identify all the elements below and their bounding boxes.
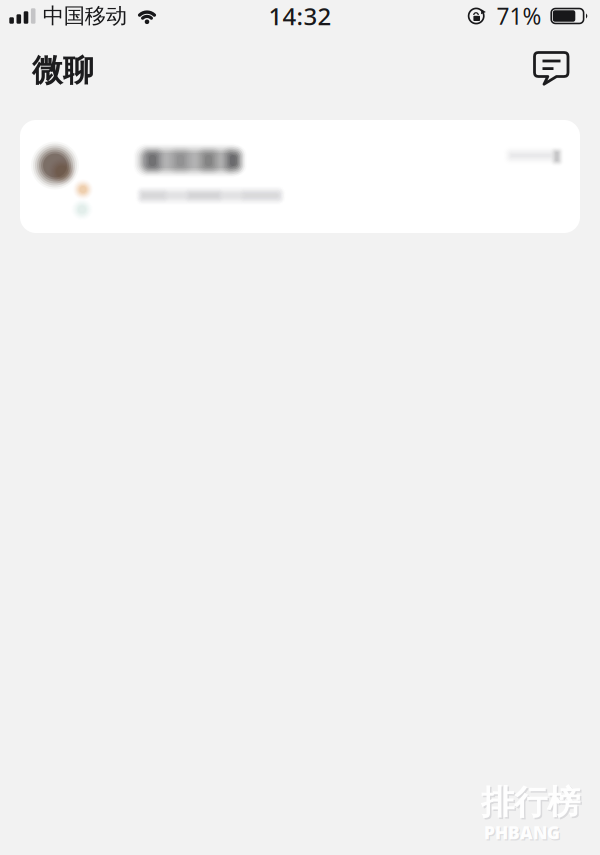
staticText: 71%	[496, 1, 541, 31]
staticText: PHBANG	[484, 821, 560, 844]
button[interactable]: New chat	[519, 37, 600, 93]
button[interactable]	[20, 120, 580, 233]
staticText: PHBANG	[485, 822, 561, 845]
staticText: 14:32	[268, 0, 331, 32]
staticText: 中国移动	[43, 3, 127, 29]
staticText: 微聊	[32, 52, 94, 89]
staticText: 排行榜	[482, 783, 581, 824]
staticText: 排行榜	[481, 782, 580, 823]
